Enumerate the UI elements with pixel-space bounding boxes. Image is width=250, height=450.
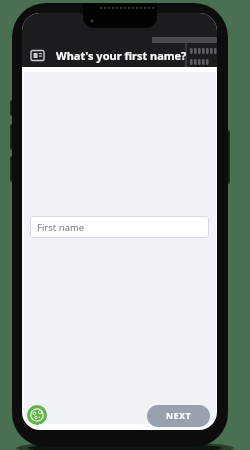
- staticText: What's your first name?: [56, 48, 187, 63]
- button[interactable]: First name: [30, 216, 209, 238]
- button[interactable]: NEXT: [147, 405, 210, 427]
- staticText: First name: [37, 221, 85, 234]
- button[interactable]: [27, 405, 47, 425]
- staticText: NEXT: [166, 410, 192, 422]
